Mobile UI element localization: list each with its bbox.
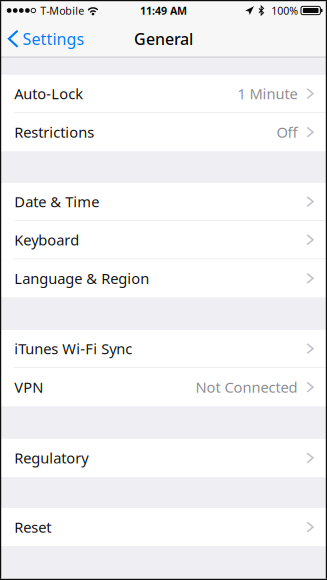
staticText: Keyboard: [14, 230, 79, 249]
button[interactable]: Restrictions: [0, 113, 327, 151]
button[interactable]: VPN: [0, 368, 327, 406]
staticText: Reset: [14, 517, 51, 537]
staticText: Language & Region: [14, 269, 149, 288]
staticText: Date & Time: [14, 192, 99, 211]
staticText: T-Mobile: [40, 3, 84, 18]
staticText: Settings: [22, 28, 84, 49]
staticText: 1 Minute: [237, 84, 297, 103]
staticText: Off: [276, 122, 297, 142]
staticText: Restrictions: [14, 122, 94, 142]
staticText: VPN: [14, 377, 43, 397]
staticText: General: [134, 28, 193, 49]
button[interactable]: iTunes Wi-Fi Sync: [0, 330, 327, 368]
staticText: Not Connected: [195, 377, 297, 397]
staticText: iTunes Wi-Fi Sync: [14, 339, 132, 358]
button[interactable]: Regulatory: [0, 439, 327, 477]
button[interactable]: Settings: [0, 23, 92, 54]
button[interactable]: Keyboard: [0, 221, 327, 259]
staticText: Regulatory: [14, 448, 88, 468]
staticText: Auto-Lock: [14, 84, 83, 103]
button[interactable]: Date & Time: [0, 183, 327, 221]
button[interactable]: Reset: [0, 508, 327, 546]
button[interactable]: Auto-Lock: [0, 75, 327, 113]
staticText: 100%: [271, 3, 298, 18]
button[interactable]: Language & Region: [0, 259, 327, 297]
staticText: 11:49 AM: [140, 3, 187, 18]
